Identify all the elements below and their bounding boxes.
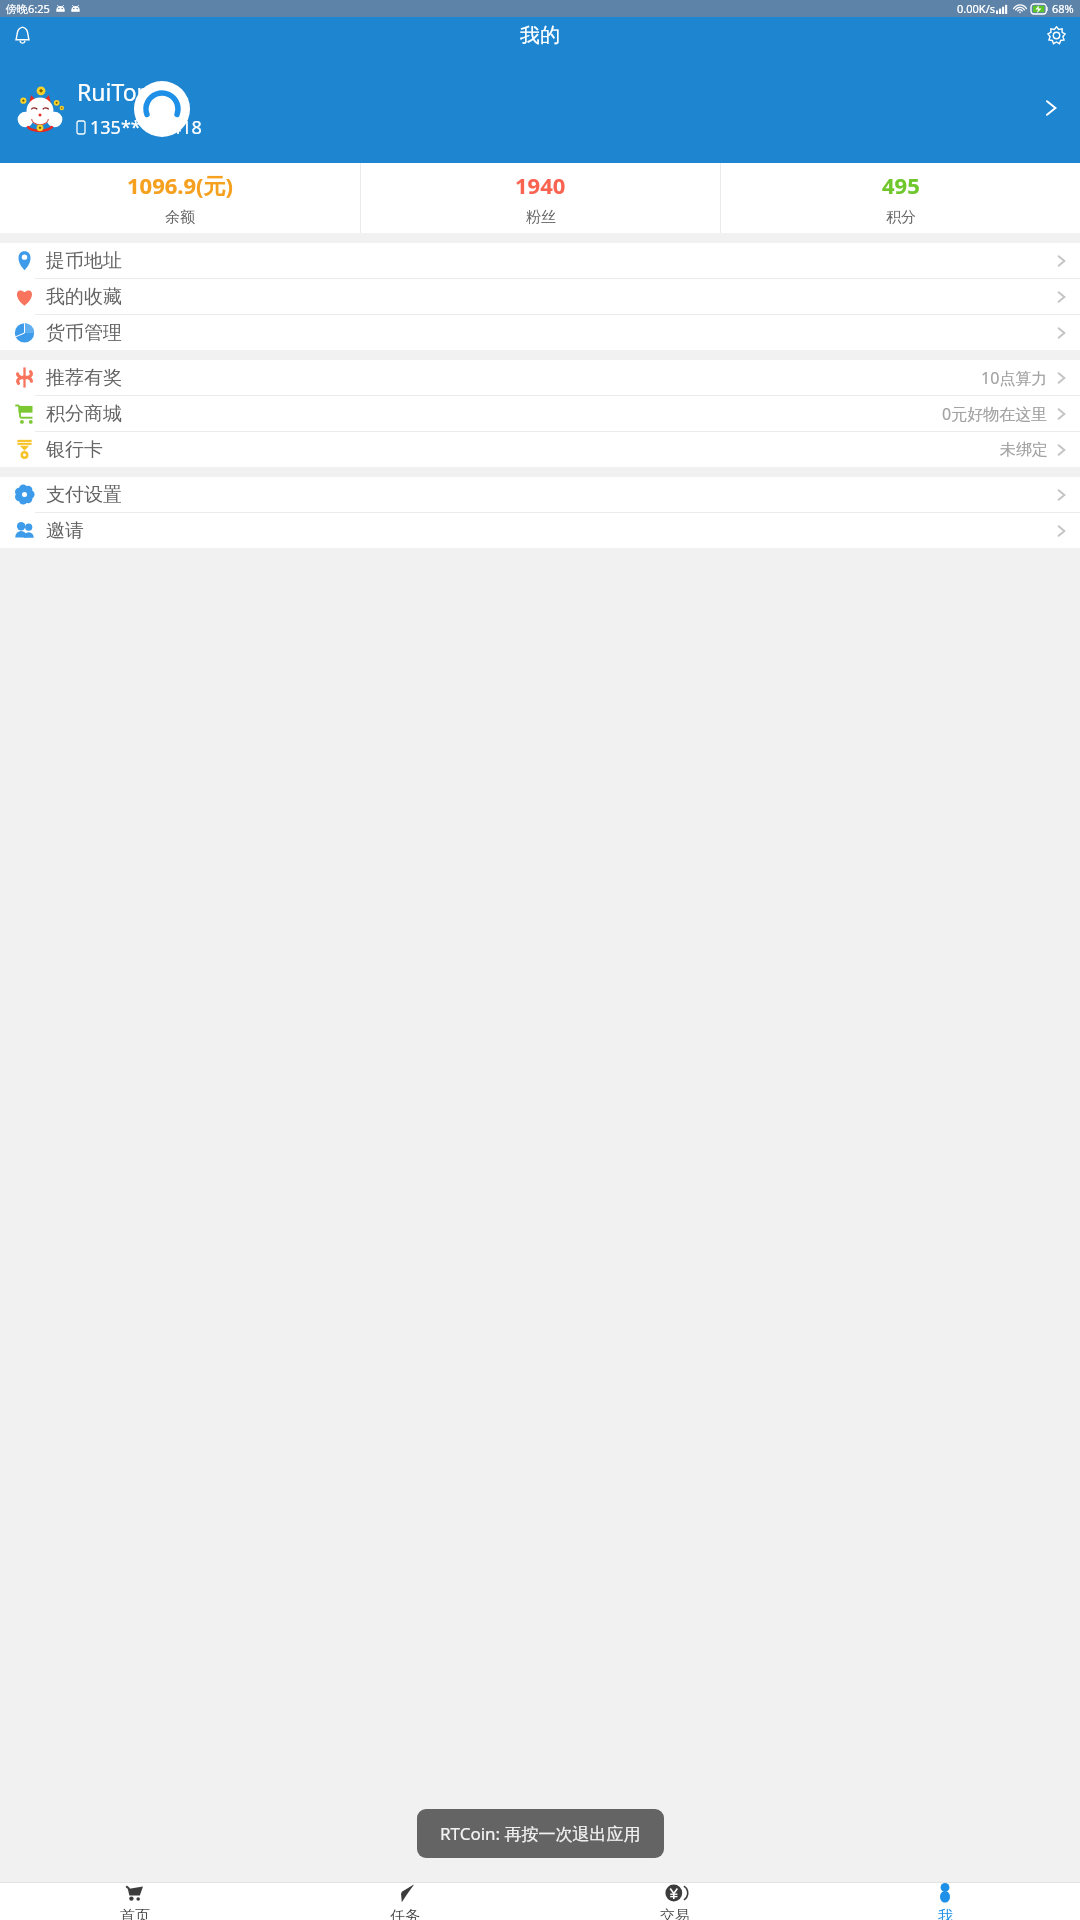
staticText: 支付设置 <box>46 483 122 507</box>
button[interactable]: 任务 <box>270 1883 540 1920</box>
staticText: 1096.9(元) <box>127 170 234 200</box>
staticText: 首页 <box>120 1907 150 1920</box>
other: Profile details <box>1036 93 1066 123</box>
staticText: 135****0418 <box>90 115 202 140</box>
staticText: 10点算力 <box>981 367 1048 389</box>
staticText: 货币管理 <box>46 321 122 345</box>
button[interactable]: 积分商城 <box>0 396 1080 431</box>
button[interactable]: 我的收藏 <box>0 279 1080 314</box>
staticText: 傍晚6:25 <box>6 1 50 16</box>
staticText: 银行卡 <box>46 438 103 462</box>
staticText: 任务 <box>390 1907 420 1920</box>
button[interactable]: 提币地址 <box>0 243 1080 278</box>
staticText: 积分商城 <box>46 402 122 426</box>
staticText: 我的 <box>520 23 560 48</box>
staticText: 粉丝 <box>526 208 556 227</box>
button[interactable]: 我 <box>810 1883 1080 1920</box>
staticText: 68% <box>1052 1 1074 16</box>
button[interactable]: 1096.9(元) <box>0 163 360 233</box>
button[interactable]: 推荐有奖 <box>0 360 1080 395</box>
staticText: 积分 <box>886 208 916 227</box>
button[interactable]: 银行卡 <box>0 432 1080 467</box>
staticText: 交易 <box>660 1907 690 1920</box>
staticText: 我 <box>938 1907 953 1920</box>
button[interactable]: RuiTong <box>14 53 1066 163</box>
staticText: 推荐有奖 <box>46 366 122 390</box>
button[interactable]: 495 <box>721 163 1080 233</box>
staticText: 0元好物在这里 <box>942 403 1048 425</box>
staticText: 邀请 <box>46 519 84 543</box>
staticText: 我的收藏 <box>46 285 122 309</box>
staticText: RTCoin: 再按一次退出应用 <box>440 1822 641 1845</box>
button[interactable]: 1940 <box>361 163 720 233</box>
button[interactable]: 邀请 <box>0 513 1080 548</box>
button[interactable]: Settings <box>1038 17 1074 53</box>
staticText: RuiTong <box>77 76 165 107</box>
button[interactable]: 交易 <box>540 1883 810 1920</box>
staticText: 495 <box>882 170 920 200</box>
staticText: 1940 <box>515 170 566 200</box>
button[interactable]: 首页 <box>0 1883 270 1920</box>
button[interactable]: 支付设置 <box>0 477 1080 512</box>
staticText: 0.00K/s <box>957 1 995 16</box>
button[interactable]: 货币管理 <box>0 315 1080 350</box>
staticText: 提币地址 <box>46 249 122 273</box>
button[interactable]: Notifications <box>4 17 40 53</box>
staticText: 未绑定 <box>1000 440 1048 460</box>
staticText: 余额 <box>165 208 195 227</box>
